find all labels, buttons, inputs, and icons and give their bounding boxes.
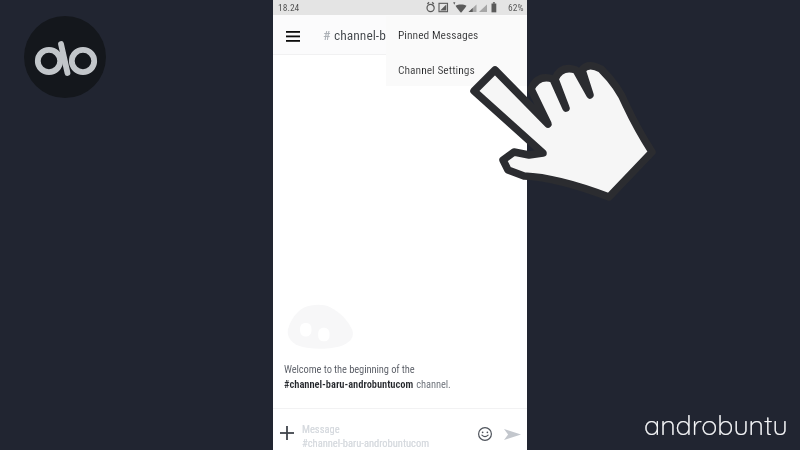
staticText: Welcome to the beginning of the [284,363,415,375]
staticText: channel. [414,378,451,390]
staticText: Channel Settings [398,63,475,76]
staticText: Pinned Messages [398,28,479,41]
staticText: channel-b [331,27,386,43]
staticText: # [323,27,331,43]
staticText: Message [302,423,340,435]
staticText: #channel-baru-androbuntucom [302,437,430,449]
button[interactable]: Pinned Messages [386,16,527,52]
staticText: #channel-baru-androbuntucom [284,378,414,390]
staticText: androbuntu [644,408,788,442]
button[interactable]: Open navigation drawer [279,21,307,49]
staticText: 18.24 [278,2,300,13]
button[interactable]: Emoji [473,422,497,446]
button[interactable]: Androbuntu logo [24,16,106,98]
button[interactable]: Send [500,422,524,446]
staticText: 62% [508,2,524,13]
button[interactable]: Add attachment [274,420,300,446]
button[interactable]: Channel Settings [386,52,527,86]
